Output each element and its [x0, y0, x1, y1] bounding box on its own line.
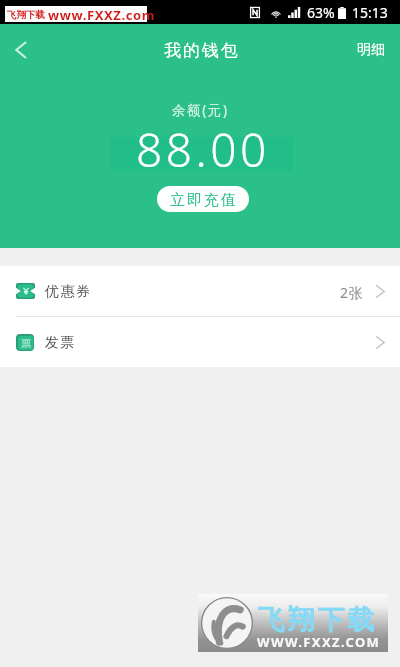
button[interactable]: 明细 — [342, 29, 400, 71]
staticText: 余额(元) — [172, 101, 229, 119]
staticText: 我的钱包 — [163, 40, 239, 61]
button[interactable]: 票 — [0, 317, 400, 367]
staticText: 飞翔下载 — [256, 603, 376, 637]
staticText: 立即充值 — [169, 191, 237, 210]
staticText: 63% — [307, 3, 335, 22]
button[interactable]: 立即充值 — [157, 186, 249, 212]
staticText: 发票 — [44, 334, 75, 352]
staticText: 飞翔下载 — [7, 9, 45, 21]
staticText: 2张 — [340, 283, 364, 302]
staticText: 15:13 — [352, 3, 388, 22]
staticText: 票 — [21, 337, 31, 350]
button[interactable]: 优惠券 — [0, 266, 400, 316]
staticText: 明细 — [357, 41, 385, 59]
staticText: 优惠券 — [45, 283, 92, 301]
staticText: 88.00 — [136, 118, 270, 181]
button[interactable]: Back — [0, 28, 42, 72]
staticText: WWW.FXXZ.COM — [257, 633, 381, 651]
staticText: www.FXXZ.com — [48, 6, 155, 24]
